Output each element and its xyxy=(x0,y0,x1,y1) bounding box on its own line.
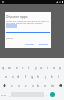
button[interactable]: x xyxy=(16,81,21,90)
button[interactable]: a xyxy=(3,72,8,81)
staticText: k xyxy=(51,74,53,79)
staticText: c xyxy=(25,83,27,88)
staticText: y xyxy=(35,65,37,70)
button[interactable]: g xyxy=(30,72,35,81)
staticText: p xyxy=(59,65,62,70)
button[interactable]: z xyxy=(9,81,14,90)
button[interactable]: ?123 xyxy=(0,90,8,99)
button[interactable]: j xyxy=(43,72,48,81)
staticText: s xyxy=(12,74,14,79)
staticText: x xyxy=(18,83,20,88)
staticText: n xyxy=(44,83,47,88)
button[interactable]: r xyxy=(20,63,25,72)
button[interactable]: o xyxy=(52,63,57,72)
staticText: a xyxy=(5,74,7,79)
button[interactable]: k xyxy=(49,72,54,81)
staticText: CANCEL xyxy=(25,42,35,45)
staticText: j xyxy=(45,74,46,79)
staticText: . xyxy=(46,92,47,97)
staticText: h xyxy=(37,74,40,79)
staticText: b xyxy=(37,83,40,88)
button[interactable]: q xyxy=(1,63,6,72)
staticText: , xyxy=(9,92,10,97)
button[interactable]: t xyxy=(26,63,31,72)
staticText: Name xyxy=(6,36,13,39)
button[interactable]: u xyxy=(39,63,44,72)
staticText: z xyxy=(11,83,13,88)
button[interactable]: v xyxy=(30,81,35,90)
button[interactable]: i xyxy=(45,63,50,72)
button[interactable]: y xyxy=(33,63,38,72)
staticText: SEARCH xyxy=(39,42,49,45)
staticText: l xyxy=(58,74,59,79)
staticText: f xyxy=(25,74,27,79)
staticText: ?123 xyxy=(1,93,7,96)
button[interactable]: Backspace xyxy=(57,81,63,90)
staticText: Discover apps xyxy=(6,14,28,18)
button[interactable]: f xyxy=(23,72,28,81)
staticText: d xyxy=(17,74,20,79)
staticText: Enter the name of the app you wish to fi… xyxy=(6,19,49,25)
staticText: u xyxy=(40,65,43,70)
button[interactable]: e xyxy=(14,63,19,72)
button[interactable]: Shift xyxy=(1,81,7,90)
staticText: v xyxy=(32,83,34,88)
button[interactable]: l xyxy=(56,72,61,81)
staticText: r xyxy=(22,65,24,70)
button[interactable]: . xyxy=(44,90,48,99)
staticText: t xyxy=(28,65,30,70)
button[interactable]: d xyxy=(16,72,21,81)
staticText: e xyxy=(16,65,18,70)
button[interactable]: n xyxy=(43,81,48,90)
staticText: m xyxy=(51,83,55,88)
staticText: w xyxy=(8,65,11,70)
button[interactable]: p xyxy=(58,63,63,72)
button[interactable]: CANCEL xyxy=(24,41,36,46)
staticText: g xyxy=(31,74,34,79)
staticText: i xyxy=(47,65,48,70)
button[interactable]: w xyxy=(7,63,12,72)
button[interactable]: c xyxy=(23,81,28,90)
button[interactable]: , xyxy=(8,90,11,99)
staticText: q xyxy=(2,65,5,70)
staticText: o xyxy=(53,65,56,70)
button[interactable]: SEARCH xyxy=(38,41,50,46)
button[interactable]: h xyxy=(36,72,41,81)
button[interactable]: b xyxy=(36,81,41,90)
button[interactable]: s xyxy=(10,72,15,81)
button[interactable]: Search xyxy=(48,90,56,99)
button[interactable]: m xyxy=(50,81,55,90)
